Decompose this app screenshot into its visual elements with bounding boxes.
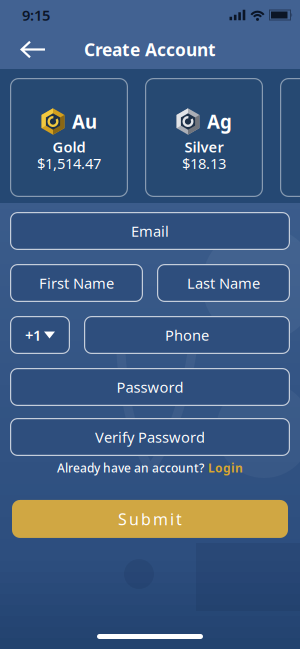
- staticText: Submit: [118, 508, 182, 529]
- staticText: Last Name: [187, 273, 260, 293]
- button[interactable]: Login: [208, 460, 243, 476]
- button[interactable]: Au: [10, 78, 128, 197]
- staticText: +1: [25, 325, 41, 345]
- staticText: $1,514.47: [37, 153, 101, 173]
- button[interactable]: Pt: [280, 78, 300, 197]
- staticText: Password: [116, 377, 183, 397]
- button[interactable]: Ag: [145, 78, 263, 197]
- staticText: 9:15: [22, 5, 50, 25]
- staticText: Ag: [207, 109, 232, 134]
- staticText: Au: [72, 109, 97, 134]
- staticText: Phone: [165, 325, 209, 345]
- staticText: Create Account: [84, 38, 216, 61]
- staticText: Email: [131, 221, 169, 241]
- button[interactable]: Country code +1: [10, 316, 70, 354]
- staticText: Already have an account?: [57, 460, 204, 476]
- staticText: Silver: [184, 137, 223, 156]
- button[interactable]: Back: [0, 32, 46, 66]
- button[interactable]: Phone: [84, 316, 290, 354]
- button[interactable]: Last Name: [157, 264, 290, 302]
- button[interactable]: Email: [10, 212, 290, 250]
- staticText: First Name: [39, 273, 114, 293]
- staticText: Verify Password: [95, 427, 205, 447]
- staticText: Login: [208, 460, 243, 476]
- button[interactable]: Verify Password: [10, 418, 290, 456]
- staticText: $18.13: [182, 153, 226, 173]
- button[interactable]: Submit: [12, 500, 288, 538]
- staticText: Gold: [52, 137, 85, 156]
- button[interactable]: Password: [10, 368, 290, 406]
- button[interactable]: First Name: [10, 264, 143, 302]
